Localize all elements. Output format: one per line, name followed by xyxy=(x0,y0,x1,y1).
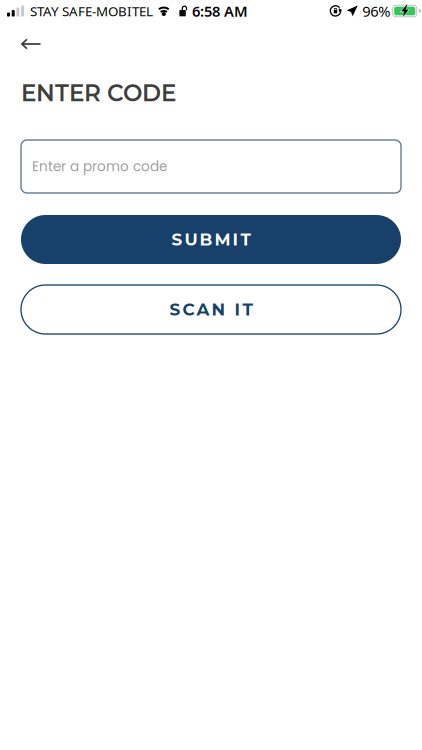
staticText: 6:58 AM xyxy=(192,1,248,21)
staticText: ENTER CODE xyxy=(21,79,176,107)
staticText: 96% xyxy=(362,1,390,21)
staticText: S U B M I T xyxy=(171,229,250,250)
staticText: Enter a promo code xyxy=(32,157,167,176)
button[interactable]: S U B M I T xyxy=(21,215,401,264)
staticText: STAY SAFE-MOBITEL xyxy=(30,2,153,20)
button[interactable]: S C A N I T xyxy=(21,285,401,334)
staticText: S C A N I T xyxy=(169,299,252,320)
button[interactable]: Back xyxy=(9,28,53,60)
